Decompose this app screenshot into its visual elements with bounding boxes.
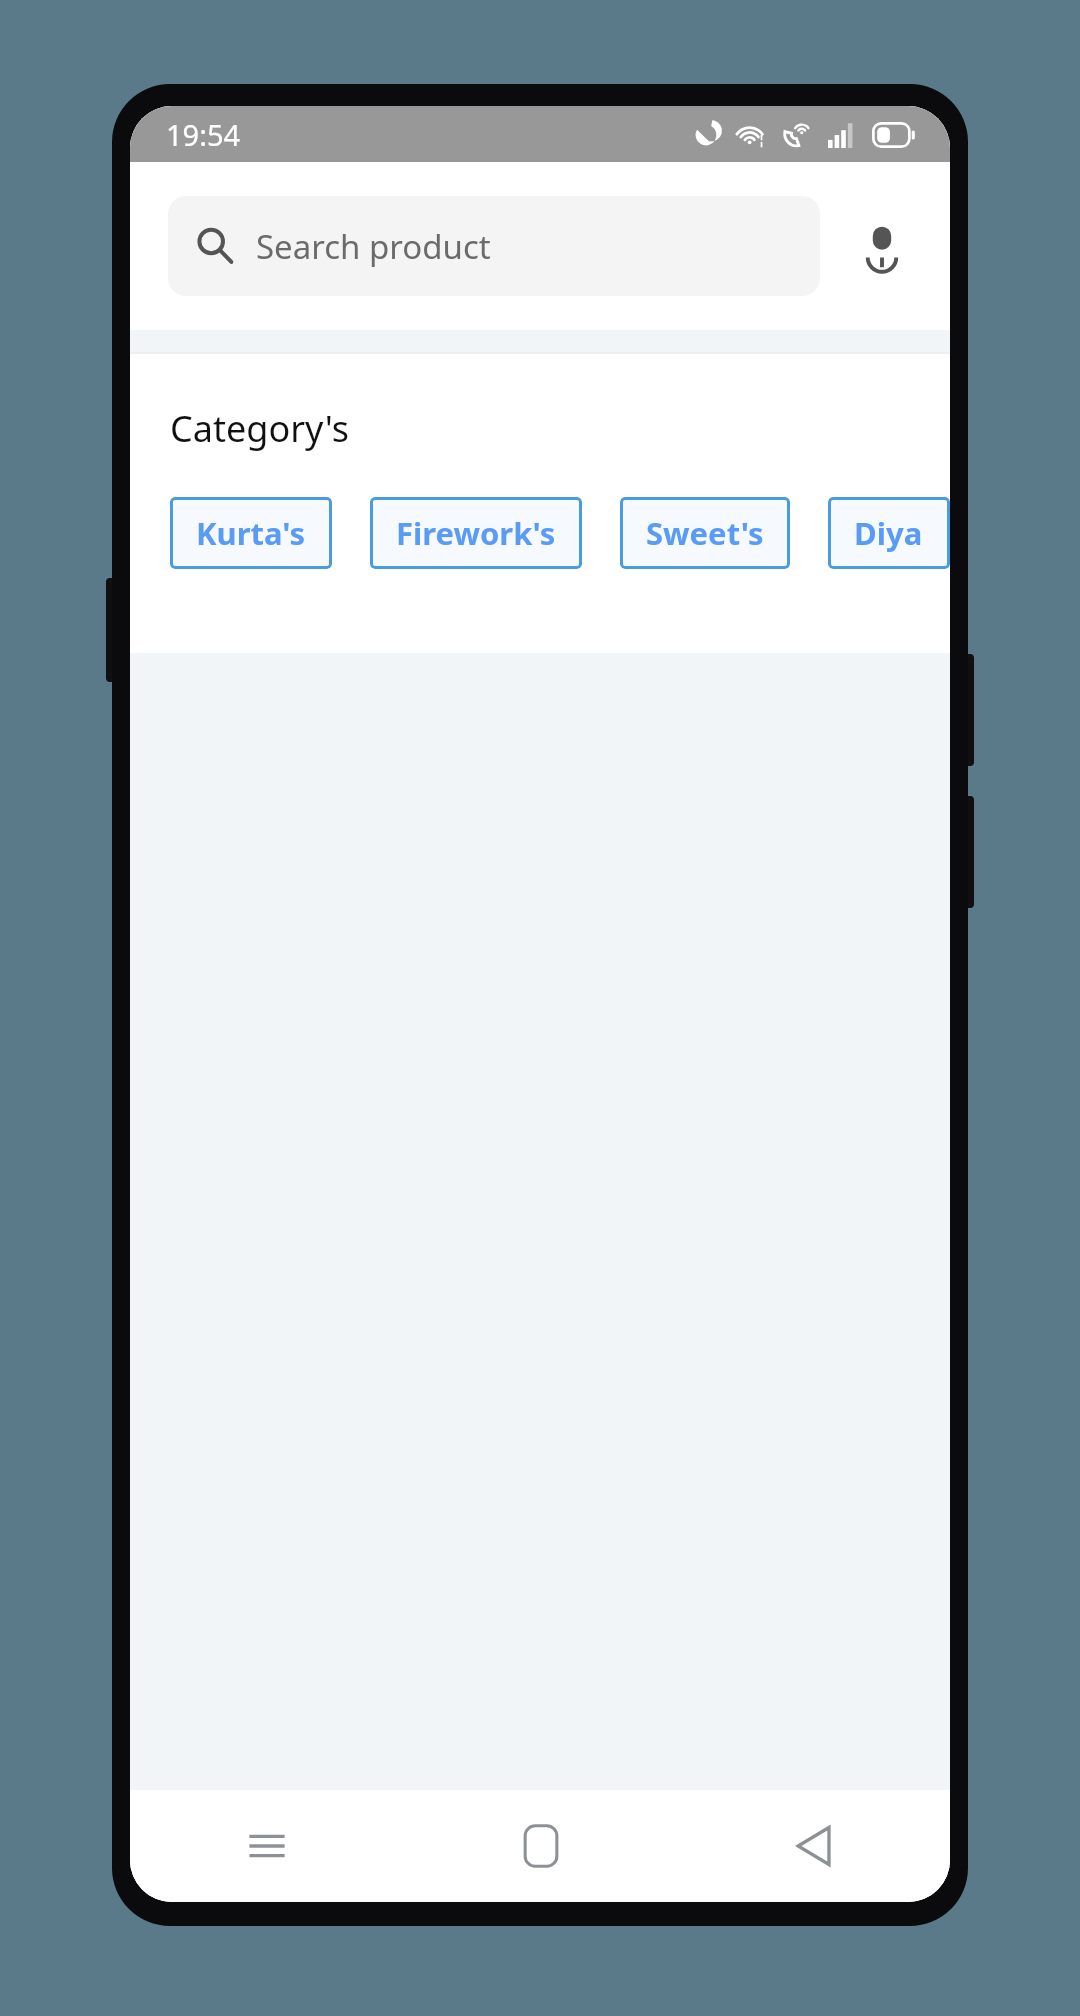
button[interactable]: Recent apps (130, 1790, 404, 1902)
button[interactable]: Diya's (828, 497, 950, 569)
staticText: Search product (256, 224, 491, 269)
button[interactable]: Home (404, 1790, 677, 1902)
staticText: Kurta's (196, 512, 306, 554)
button[interactable]: Search product (168, 196, 820, 296)
button[interactable]: Sweet's (620, 497, 790, 569)
staticText: Firework's (396, 512, 556, 554)
staticText: Diya's (854, 512, 924, 554)
button[interactable]: Voice search (844, 208, 920, 284)
staticText: Category's (170, 404, 350, 453)
staticText: 19:54 (166, 115, 241, 154)
staticText: Sweet's (646, 512, 764, 554)
button[interactable]: Kurta's (170, 497, 332, 569)
button[interactable]: Back (677, 1790, 950, 1902)
button[interactable]: Firework's (370, 497, 582, 569)
